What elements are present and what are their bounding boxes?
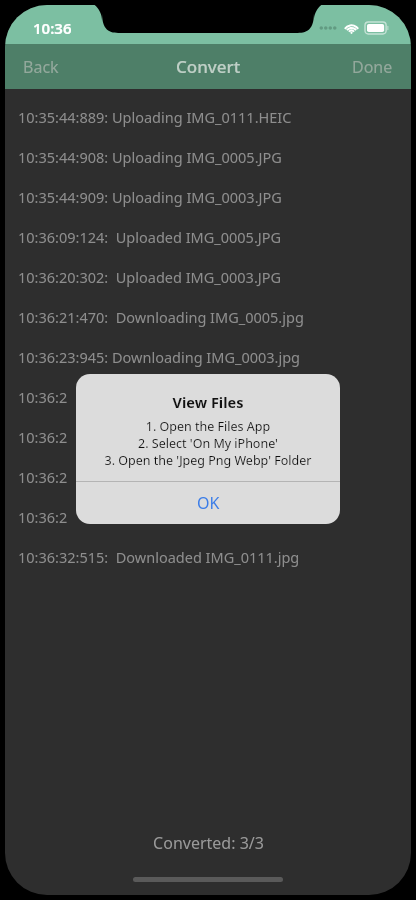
button[interactable]: Convert	[176, 55, 241, 78]
staticText: OK	[197, 492, 220, 514]
staticText: 10:35:44:908: Uploading IMG_0005.JPG	[18, 147, 282, 167]
button[interactable]: 10:36:32:515: Downloaded IMG_0111.jpg	[5, 537, 411, 577]
staticText: 10:36	[33, 18, 72, 38]
button[interactable]: 10:35:44:909: Uploading IMG_0003.JPG	[5, 177, 411, 217]
staticText: 10:36:2	[18, 387, 68, 407]
staticText: 1. Open the Files App 2. Select 'On My i…	[76, 418, 340, 469]
staticText: 10:35:44:889: Uploading IMG_0111.HEIC	[18, 107, 292, 127]
button[interactable]: OK	[76, 481, 340, 524]
button[interactable]: 10:36:23:945: Downloading IMG_0003.jpg	[5, 337, 411, 377]
staticText: 10:36:20:302: Uploaded IMG_0003.JPG	[18, 267, 282, 287]
staticText: Converted: 3/3	[153, 832, 264, 854]
button[interactable]: Done	[352, 44, 393, 89]
staticText: 10:36:32:515: Downloaded IMG_0111.jpg	[18, 547, 300, 567]
staticText: View Files	[76, 392, 340, 412]
button[interactable]: 10:36:2	[5, 417, 411, 457]
button[interactable]: 10:36:09:124: Uploaded IMG_0005.JPG	[5, 217, 411, 257]
staticText: Back	[23, 56, 59, 78]
button[interactable]: 10:36:21:470: Downloading IMG_0005.jpg	[5, 297, 411, 337]
button[interactable]: 10:36:2	[5, 457, 411, 497]
button[interactable]: Back	[23, 44, 59, 89]
staticText: 10:36:09:124: Uploaded IMG_0005.JPG	[18, 227, 282, 247]
button[interactable]: 10:36:2	[5, 497, 411, 537]
button[interactable]: 10:35:44:908: Uploading IMG_0005.JPG	[5, 137, 411, 177]
button[interactable]: 10:35:44:889: Uploading IMG_0111.HEIC	[5, 97, 411, 137]
staticText: 10:36:2	[18, 427, 68, 447]
staticText: Done	[352, 56, 393, 78]
staticText: 10:36:23:945: Downloading IMG_0003.jpg	[18, 347, 301, 367]
staticText: 10:35:44:909: Uploading IMG_0003.JPG	[18, 187, 282, 207]
staticText: Convert	[176, 55, 241, 78]
button[interactable]: 10:36:20:302: Uploaded IMG_0003.JPG	[5, 257, 411, 297]
staticText: 10:36:2	[18, 507, 68, 527]
button[interactable]: 10:36:2	[5, 377, 411, 417]
staticText: 10:36:21:470: Downloading IMG_0005.jpg	[18, 307, 304, 327]
staticText: 10:36:2	[18, 467, 68, 487]
